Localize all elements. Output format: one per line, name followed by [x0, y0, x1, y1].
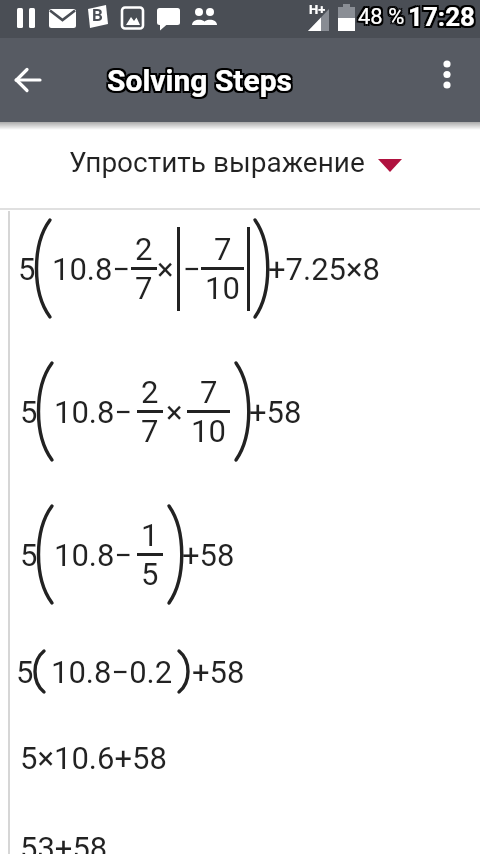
button[interactable]: [423, 38, 471, 122]
staticText: 7: [135, 270, 153, 306]
staticText: 17:28: [408, 2, 476, 32]
staticText: 48 %: [356, 2, 403, 28]
staticText: 5×10.6+58: [20, 740, 167, 776]
staticText: −: [183, 251, 201, 287]
staticText: 5: [18, 251, 36, 287]
staticText: B: [92, 5, 103, 25]
staticText: 17:28: [410, 4, 478, 34]
staticText: 10.8−: [52, 251, 131, 287]
staticText: 2: [135, 231, 153, 267]
staticText: 7: [214, 231, 232, 267]
staticText: Solving Steps: [109, 61, 295, 96]
staticText: 53+58: [20, 830, 108, 854]
staticText: 5: [141, 556, 159, 592]
staticText: 1: [141, 517, 159, 553]
staticText: 48 %: [358, 2, 405, 28]
staticText: 5: [16, 654, 34, 690]
staticText: Упростить выражение: [69, 146, 365, 179]
staticText: 7: [141, 413, 159, 449]
staticText: 17:28: [410, 0, 478, 30]
staticText: 48 %: [360, 2, 407, 28]
staticText: 48 %: [358, 4, 405, 30]
staticText: Solving Steps: [107, 65, 293, 100]
staticText: H+: [309, 2, 326, 17]
staticText: 10.8−0.2: [51, 654, 173, 690]
staticText: 48 %: [360, 4, 407, 30]
staticText: 17:28: [406, 4, 474, 34]
button[interactable]: [0, 38, 56, 122]
staticText: 10.8−: [54, 537, 133, 573]
staticText: 5: [20, 537, 38, 573]
staticText: 17:28: [408, 0, 476, 30]
staticText: Solving Steps: [105, 63, 291, 98]
staticText: Solving Steps: [109, 63, 295, 98]
staticText: ×: [166, 394, 183, 430]
staticText: ×: [157, 251, 174, 287]
staticText: 48 %: [360, 6, 407, 32]
staticText: Solving Steps: [109, 65, 295, 100]
staticText: 17:28: [406, 2, 474, 32]
staticText: +58: [249, 394, 302, 430]
staticText: +58: [182, 537, 235, 573]
staticText: 48 %: [356, 6, 403, 32]
staticText: 48 %: [358, 6, 405, 32]
staticText: +7.25×8: [268, 251, 380, 287]
staticText: 17:28: [410, 2, 478, 32]
staticText: 10: [191, 413, 226, 449]
staticText: +58: [192, 654, 245, 690]
staticText: 7: [200, 374, 218, 410]
staticText: 10: [205, 270, 240, 306]
staticText: 2: [141, 374, 159, 410]
staticText: Solving Steps: [105, 61, 291, 96]
staticText: 5: [20, 394, 38, 430]
staticText: Solving Steps: [107, 61, 293, 96]
button[interactable]: Упростить выражение: [0, 122, 480, 210]
staticText: 17:28: [406, 0, 474, 30]
staticText: Solving Steps: [107, 63, 293, 98]
staticText: 10.8−: [54, 394, 133, 430]
staticText: 48 %: [356, 4, 403, 30]
staticText: Solving Steps: [105, 65, 291, 100]
staticText: 17:28: [408, 4, 476, 34]
